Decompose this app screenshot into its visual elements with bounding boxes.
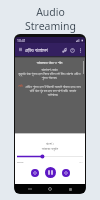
button[interactable]: Home — [47, 186, 53, 192]
staticText: বাংলাদেশ বেতার মুহূর্তের খবর শুনতে হলে ন… — [18, 67, 81, 80]
staticText: আজকের খবর ও গান — [18, 60, 81, 65]
button[interactable]: Navigation menu — [17, 46, 24, 53]
button[interactable]: Pause — [45, 167, 56, 178]
staticText: রেডিও শুনতে হলে ইন্টারনেট সংযোগ থাকতে হব… — [25, 84, 81, 97]
staticText: বাংলা ১ — [17, 141, 83, 146]
button[interactable]: More options — [76, 46, 84, 54]
staticText: Streaming — [25, 19, 76, 33]
button[interactable]: Forward — [62, 169, 70, 177]
staticText: আজকের অনুষ্ঠান — [17, 147, 83, 151]
button[interactable]: Back — [27, 186, 33, 192]
staticText: --:-- — [79, 160, 83, 163]
button[interactable]: Recent apps — [67, 186, 73, 192]
staticText: Audio — [36, 5, 65, 19]
button[interactable]: Refresh — [68, 46, 76, 54]
staticText: 10:41 — [17, 38, 26, 43]
staticText: নোটঃ — [18, 84, 24, 87]
staticText: 00:05 — [17, 160, 24, 163]
button[interactable]: Music — [60, 46, 68, 54]
button[interactable]: Rewind — [31, 169, 39, 177]
staticText: রেডিও বাংলাদেশ — [25, 47, 48, 53]
